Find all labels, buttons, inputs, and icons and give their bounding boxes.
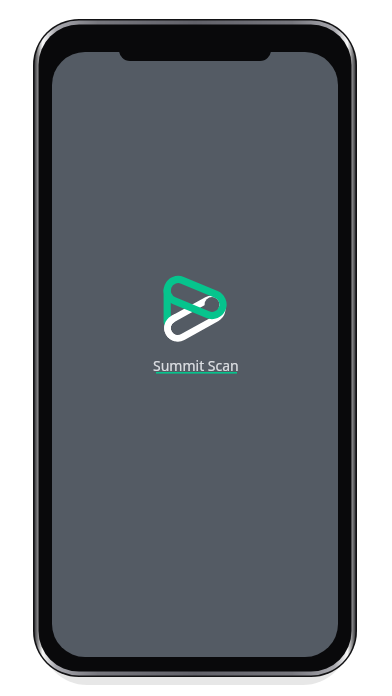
staticText: Summit Scan (153, 356, 239, 375)
